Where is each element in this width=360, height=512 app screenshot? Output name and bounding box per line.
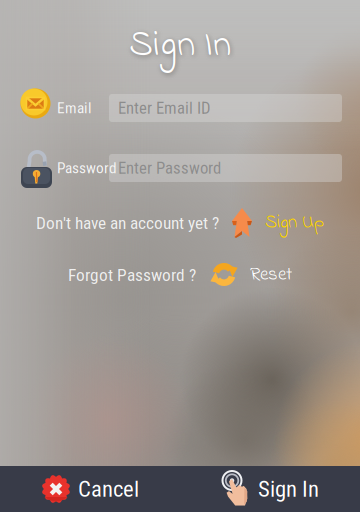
staticText: Enter Email ID <box>118 98 211 118</box>
button[interactable]: Cancel <box>0 466 180 512</box>
staticText: Sign In <box>129 19 231 73</box>
staticText: Sign In <box>258 476 319 502</box>
staticText: Don't have an account yet ? <box>36 213 219 233</box>
button[interactable]: Don't have an account yet ? <box>30 204 330 242</box>
button[interactable]: Forgot Password ? <box>62 258 298 292</box>
staticText: Email <box>57 99 92 117</box>
staticText: Enter Password <box>118 158 221 178</box>
staticText: Sign Up <box>265 209 324 237</box>
button[interactable]: Sign In <box>180 466 360 512</box>
staticText: Reset <box>250 261 292 289</box>
staticText: Cancel <box>78 476 139 502</box>
staticText: Forgot Password ? <box>68 265 196 285</box>
staticText: Password <box>57 159 117 177</box>
